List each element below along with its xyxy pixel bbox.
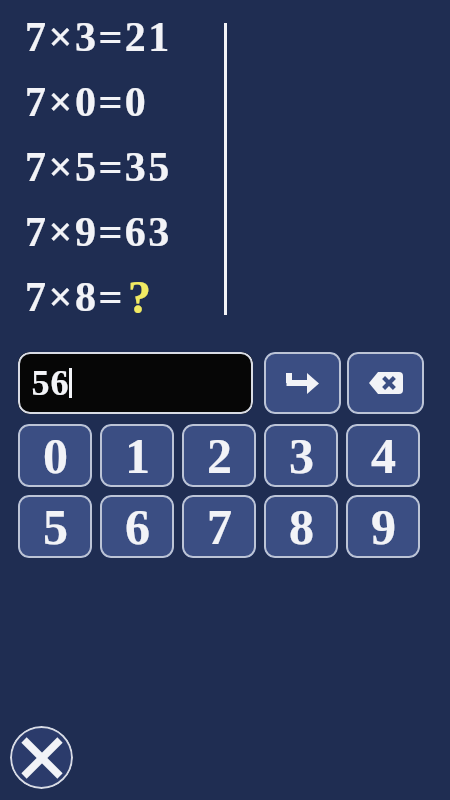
staticText: ?	[128, 272, 154, 323]
staticText: 9	[371, 499, 396, 554]
staticText: 0	[43, 428, 68, 483]
staticText: 7×8=	[25, 274, 125, 321]
staticText: 7×3=21	[25, 14, 172, 61]
staticText: 7×0=0	[25, 79, 149, 126]
button[interactable]: 0	[18, 424, 92, 487]
button[interactable]	[10, 726, 73, 789]
button[interactable]	[264, 352, 341, 414]
button[interactable]: 4	[346, 424, 420, 487]
button[interactable]: 9	[346, 495, 420, 558]
staticText: 5	[43, 499, 68, 554]
staticText: 3	[289, 428, 314, 483]
button[interactable]: 56	[18, 352, 253, 414]
staticText: 1	[125, 428, 150, 483]
staticText: 7×5=35	[25, 144, 172, 191]
button[interactable]	[347, 352, 424, 414]
staticText: 6	[125, 499, 150, 554]
button[interactable]: 6	[100, 495, 174, 558]
staticText: 4	[371, 428, 396, 483]
button[interactable]: 7	[182, 495, 256, 558]
button[interactable]: 3	[264, 424, 338, 487]
staticText: 56	[31, 363, 69, 403]
staticText: 8	[289, 499, 314, 554]
staticText: 2	[207, 428, 232, 483]
staticText: 7	[207, 499, 232, 554]
button[interactable]: 8	[264, 495, 338, 558]
button[interactable]: 2	[182, 424, 256, 487]
button[interactable]: 5	[18, 495, 92, 558]
button[interactable]: 1	[100, 424, 174, 487]
staticText: 7×9=63	[25, 209, 172, 256]
